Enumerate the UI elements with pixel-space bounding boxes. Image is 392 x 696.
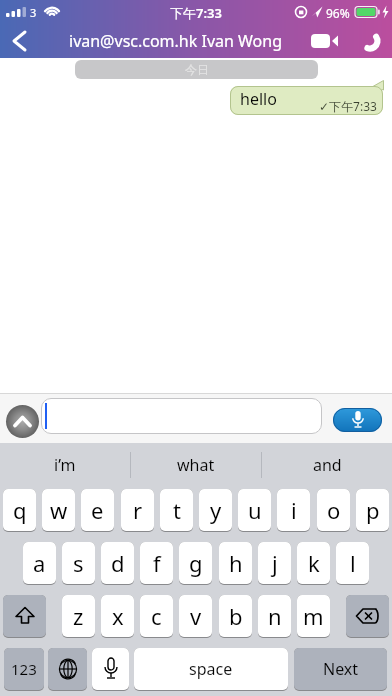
staticText: s	[73, 548, 84, 578]
button[interactable]: x	[101, 595, 134, 638]
button[interactable]: r	[121, 489, 154, 532]
button[interactable]: j	[258, 542, 291, 585]
staticText: i	[291, 495, 297, 525]
staticText: b	[229, 601, 243, 631]
staticText: c	[151, 601, 162, 631]
staticText: x	[112, 601, 124, 631]
button[interactable]: and	[262, 443, 392, 487]
button[interactable]: s	[62, 542, 95, 585]
staticText: and	[313, 454, 342, 476]
staticText: g	[189, 548, 203, 578]
button[interactable]: o	[317, 489, 350, 532]
button[interactable]: Next	[294, 648, 387, 691]
button[interactable]: z	[62, 595, 95, 638]
staticText: 3	[30, 5, 37, 20]
button[interactable]: i	[277, 489, 310, 532]
staticText: e	[91, 495, 104, 525]
staticText: 下午7:33	[170, 4, 222, 22]
button[interactable]: f	[140, 542, 173, 585]
button[interactable]: l	[336, 542, 369, 585]
button[interactable]	[6, 405, 39, 438]
staticText: q	[13, 495, 27, 525]
staticText: h	[229, 548, 243, 578]
staticText: u	[248, 495, 262, 525]
button[interactable]: i’m	[0, 443, 130, 487]
button[interactable]: y	[199, 489, 232, 532]
staticText: f	[153, 548, 161, 578]
button[interactable]: m	[297, 595, 330, 638]
staticText: ✓下午7:33	[319, 98, 377, 114]
button[interactable]: k	[297, 542, 330, 585]
staticText: i’m	[54, 454, 76, 476]
staticText: d	[111, 548, 125, 578]
button[interactable]: 123	[4, 648, 44, 691]
staticText: what	[177, 454, 215, 476]
button[interactable]: c	[140, 595, 173, 638]
button[interactable]: what	[131, 443, 261, 487]
staticText: 今日	[185, 62, 209, 77]
button[interactable]	[0, 24, 40, 58]
staticText: j	[272, 548, 278, 578]
button[interactable]: d	[101, 542, 134, 585]
staticText: m	[303, 601, 324, 631]
staticText: p	[366, 495, 380, 525]
staticText: y	[210, 495, 222, 525]
button[interactable]	[3, 595, 46, 638]
staticText: ivan@vsc.com.hk Ivan Wong	[69, 30, 283, 52]
staticText: n	[268, 601, 282, 631]
button[interactable]: q	[3, 489, 36, 532]
staticText: z	[73, 601, 84, 631]
button[interactable]: space	[134, 648, 288, 691]
button[interactable]	[48, 648, 87, 691]
staticText: o	[327, 495, 341, 525]
button[interactable]	[92, 648, 129, 691]
staticText: k	[308, 548, 320, 578]
staticText: r	[133, 495, 143, 525]
button[interactable]: t	[160, 489, 193, 532]
button[interactable]: b	[219, 595, 252, 638]
button[interactable]: h	[219, 542, 252, 585]
staticText: Next	[323, 658, 359, 680]
staticText: t	[173, 495, 181, 525]
button[interactable]	[348, 24, 392, 58]
button[interactable]: u	[238, 489, 271, 532]
staticText: a	[33, 548, 46, 578]
button[interactable]: g	[179, 542, 212, 585]
staticText: space	[189, 658, 233, 680]
button[interactable]: v	[179, 595, 212, 638]
button[interactable]: w	[42, 489, 75, 532]
staticText: w	[50, 495, 68, 525]
staticText: 123	[11, 659, 37, 679]
button[interactable]: n	[258, 595, 291, 638]
button[interactable]: e	[81, 489, 114, 532]
button[interactable]	[346, 595, 389, 638]
staticText: v	[190, 601, 202, 631]
button[interactable]	[333, 408, 382, 432]
staticText: hello	[240, 88, 277, 110]
button[interactable]	[305, 24, 345, 58]
button[interactable]: p	[356, 489, 389, 532]
staticText: l	[350, 548, 356, 578]
staticText: 96%	[326, 5, 350, 21]
button[interactable]	[41, 398, 322, 434]
button[interactable]: a	[23, 542, 56, 585]
